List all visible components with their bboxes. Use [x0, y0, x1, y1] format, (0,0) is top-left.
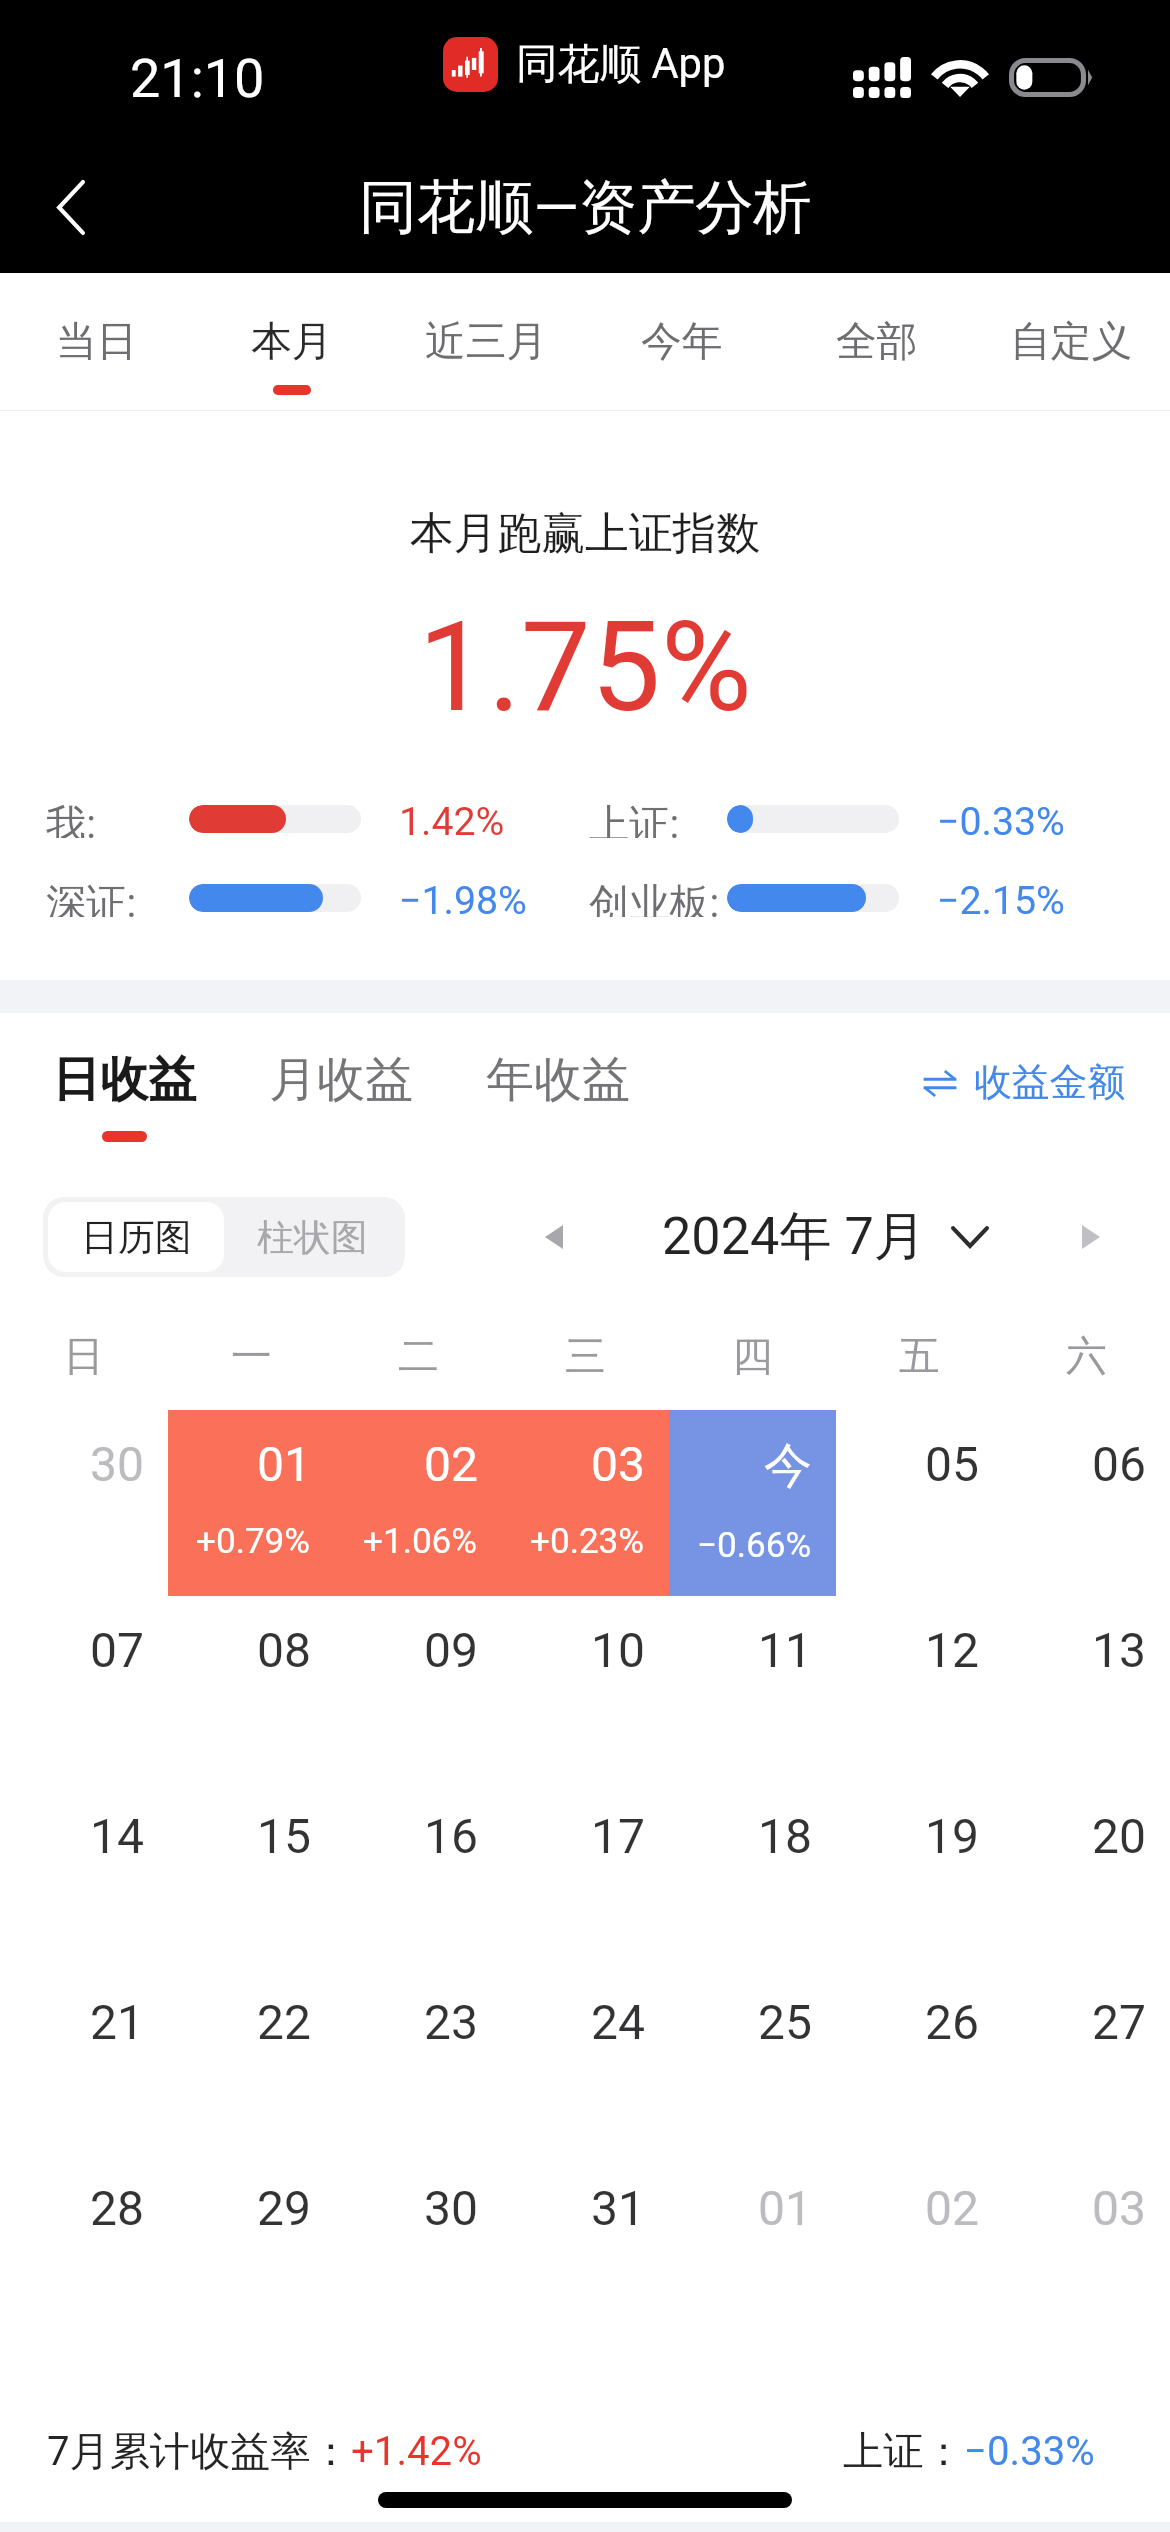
- button[interactable]: 柱状图: [224, 1202, 400, 1272]
- button[interactable]: 19: [836, 1782, 1003, 1968]
- button[interactable]: 07: [0, 1596, 168, 1782]
- button[interactable]: Back: [0, 141, 141, 273]
- staticText: 25: [758, 1994, 812, 2050]
- button[interactable]: 30: [335, 2154, 502, 2340]
- button[interactable]: 收益金额: [925, 1059, 1126, 1107]
- button[interactable]: 31: [502, 2154, 669, 2340]
- button[interactable]: Previous month: [527, 1210, 581, 1264]
- button[interactable]: 近三月: [389, 273, 584, 411]
- button[interactable]: 23: [335, 1968, 502, 2154]
- staticText: 21:10: [130, 47, 265, 110]
- staticText: 近三月: [425, 316, 548, 367]
- staticText: −0.33%: [937, 799, 1065, 838]
- button[interactable]: 13: [1003, 1596, 1170, 1782]
- button[interactable]: Select month: [940, 1207, 1000, 1267]
- staticText: 26: [925, 1994, 979, 2050]
- button[interactable]: 24: [502, 1968, 669, 2154]
- staticText: 今: [764, 1436, 812, 1496]
- button[interactable]: 年收益: [486, 1050, 630, 1142]
- button[interactable]: 02: [836, 2154, 1003, 2340]
- staticText: 10: [591, 1622, 645, 1678]
- button[interactable]: 28: [0, 2154, 168, 2340]
- staticText: 03: [1092, 2180, 1146, 2236]
- staticText: 五: [836, 1331, 1003, 1382]
- button[interactable]: 01: [168, 1410, 335, 1596]
- button[interactable]: 09: [335, 1596, 502, 1782]
- button[interactable]: 月收益: [269, 1050, 413, 1142]
- staticText: 21: [90, 1994, 144, 2050]
- staticText: 三: [502, 1331, 669, 1382]
- staticText: 收益金额: [974, 1059, 1126, 1107]
- staticText: +0.79%: [196, 1520, 311, 1561]
- button[interactable]: Next month: [1064, 1210, 1118, 1264]
- button[interactable]: 14: [0, 1782, 168, 1968]
- staticText: 全部: [836, 316, 918, 367]
- button[interactable]: 30: [0, 1410, 168, 1596]
- button[interactable]: 15: [168, 1782, 335, 1968]
- staticText: 30: [424, 2180, 478, 2236]
- button[interactable]: 06: [1003, 1410, 1170, 1596]
- button[interactable]: 08: [168, 1596, 335, 1782]
- button[interactable]: 02: [335, 1410, 502, 1596]
- button[interactable]: 20: [1003, 1782, 1170, 1968]
- staticText: 1.42%: [399, 799, 505, 838]
- staticText: −0.66%: [697, 1524, 812, 1565]
- staticText: 28: [90, 2180, 144, 2236]
- staticText: 15: [257, 1808, 311, 1864]
- staticText: 日: [0, 1331, 168, 1382]
- staticText: 同花顺—资产分析: [359, 171, 812, 244]
- staticText: 四: [669, 1331, 836, 1382]
- staticText: 29: [257, 2180, 311, 2236]
- button[interactable]: 25: [669, 1968, 836, 2154]
- staticText: 03: [591, 1436, 645, 1492]
- button[interactable]: 本月: [194, 273, 389, 411]
- button[interactable]: 03: [502, 1410, 669, 1596]
- staticText: 12: [925, 1622, 979, 1678]
- staticText: −1.98%: [399, 878, 527, 917]
- button[interactable]: 日历图: [48, 1202, 224, 1272]
- staticText: 自定义: [1010, 316, 1133, 367]
- staticText: 27: [1092, 1994, 1146, 2050]
- button[interactable]: 今年: [584, 273, 779, 411]
- staticText: 月收益: [269, 1050, 413, 1110]
- button[interactable]: 03: [1003, 2154, 1170, 2340]
- staticText: 31: [591, 2180, 645, 2236]
- button[interactable]: 11: [669, 1596, 836, 1782]
- staticText: 14: [90, 1808, 144, 1864]
- staticText: 我:: [46, 799, 96, 838]
- button[interactable]: 17: [502, 1782, 669, 1968]
- button[interactable]: 全部: [779, 273, 974, 411]
- button[interactable]: 22: [168, 1968, 335, 2154]
- staticText: 同花顺 App: [516, 38, 726, 91]
- staticText: 1.75%: [0, 594, 1170, 740]
- staticText: +0.23%: [530, 1520, 645, 1561]
- staticText: 06: [1092, 1436, 1146, 1492]
- staticText: 日收益: [52, 1050, 196, 1110]
- button[interactable]: 当日: [0, 273, 194, 411]
- staticText: 24: [591, 1994, 645, 2050]
- button[interactable]: 29: [168, 2154, 335, 2340]
- staticText: 01: [257, 1436, 311, 1492]
- button[interactable]: 10: [502, 1596, 669, 1782]
- button[interactable]: 05: [836, 1410, 1003, 1596]
- staticText: 22: [257, 1994, 311, 2050]
- staticText: 上证:: [589, 799, 680, 838]
- button[interactable]: 26: [836, 1968, 1003, 2154]
- button[interactable]: 27: [1003, 1968, 1170, 2154]
- button[interactable]: 日收益: [52, 1050, 196, 1142]
- staticText: 当日: [56, 316, 138, 367]
- staticText: 02: [925, 2180, 979, 2236]
- button[interactable]: 18: [669, 1782, 836, 1968]
- staticText: 19: [925, 1808, 979, 1864]
- button[interactable]: 21: [0, 1968, 168, 2154]
- button[interactable]: 今: [669, 1410, 836, 1596]
- button[interactable]: 12: [836, 1596, 1003, 1782]
- staticText: 本月跑赢上证指数: [0, 506, 1170, 561]
- staticText: 本月: [251, 316, 333, 367]
- staticText: 08: [257, 1622, 311, 1678]
- button[interactable]: 01: [669, 2154, 836, 2340]
- staticText: 年收益: [486, 1050, 630, 1110]
- button[interactable]: 自定义: [974, 273, 1169, 411]
- button[interactable]: 16: [335, 1782, 502, 1968]
- staticText: 一: [168, 1331, 335, 1382]
